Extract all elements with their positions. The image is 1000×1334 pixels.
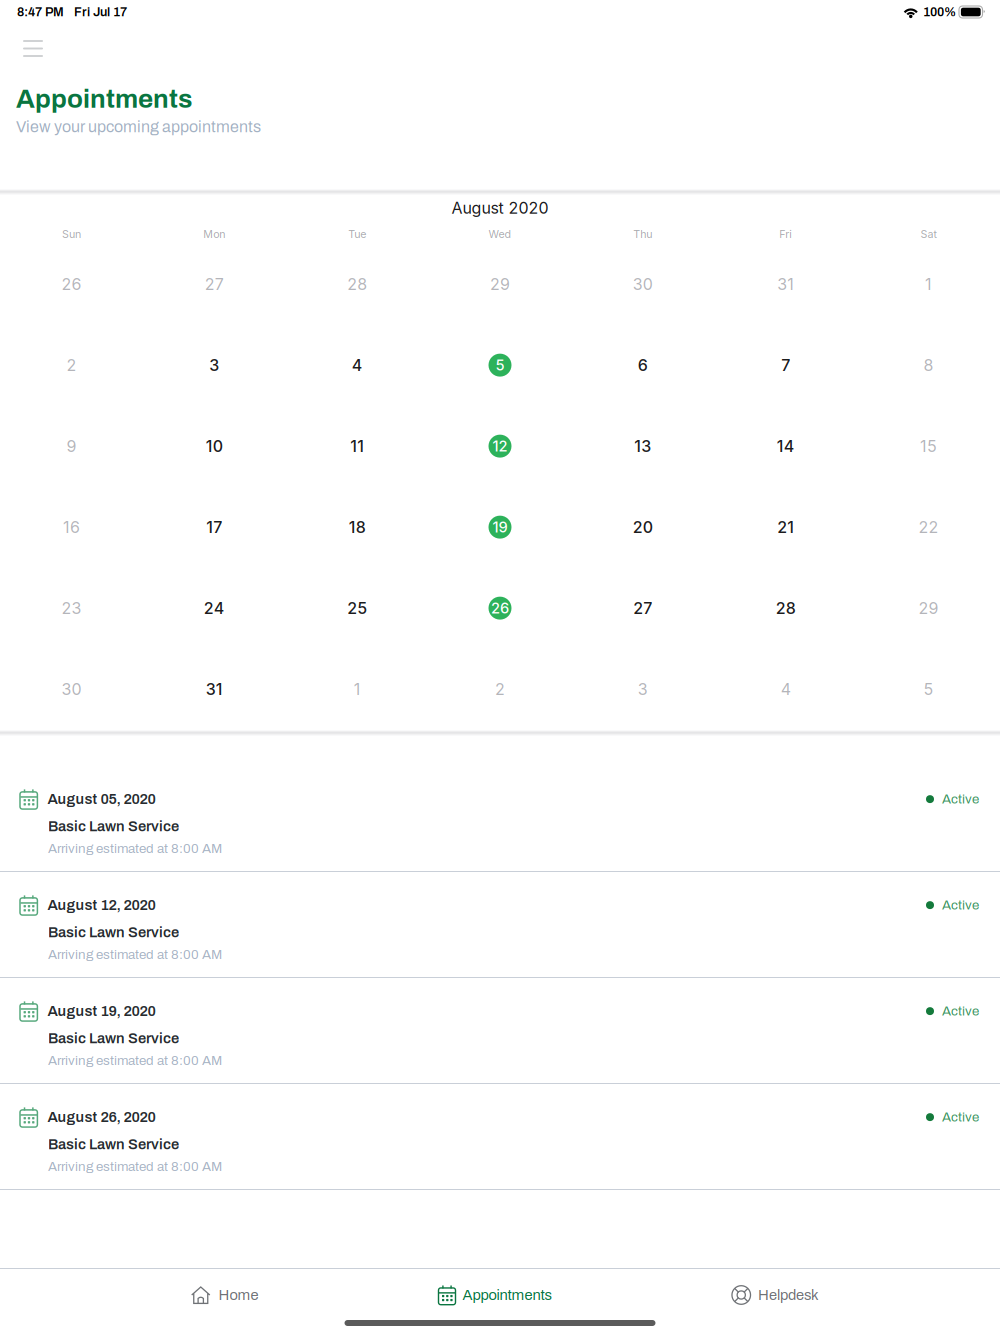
staticText: 18 — [349, 517, 366, 537]
staticText: 9 — [66, 436, 76, 456]
button[interactable]: 27 — [143, 244, 286, 325]
button[interactable]: Home — [191, 1273, 258, 1317]
staticText: 29 — [919, 598, 939, 618]
button[interactable]: 28 — [714, 568, 857, 649]
staticText: 31 — [206, 679, 223, 699]
button[interactable]: 25 — [286, 568, 429, 649]
button[interactable]: 2 — [0, 325, 143, 406]
staticText: 25 — [347, 598, 367, 618]
staticText: Active — [942, 1110, 979, 1124]
button[interactable]: 31 — [714, 244, 857, 325]
staticText: Active — [942, 898, 979, 912]
staticText: 8 — [924, 355, 934, 375]
staticText: 19 — [492, 518, 507, 536]
staticText: August 12, 2020 — [47, 897, 155, 913]
staticText: 3 — [209, 355, 219, 375]
staticText: 24 — [204, 598, 225, 618]
staticText: 13 — [634, 436, 651, 456]
button[interactable]: August 19, 2020 — [0, 978, 1000, 1083]
staticText: 100% — [923, 5, 956, 19]
button[interactable]: 4 — [714, 649, 857, 730]
button[interactable]: 2 — [429, 649, 571, 730]
staticText: 26 — [491, 599, 509, 617]
button[interactable]: 20 — [571, 487, 714, 568]
button[interactable]: 11 — [286, 406, 429, 487]
button[interactable]: 19 — [429, 487, 571, 568]
staticText: August 2020 — [451, 198, 548, 218]
staticText: Basic Lawn Service — [48, 818, 179, 834]
staticText: Arriving estimated at 8:00 AM — [48, 841, 222, 856]
button[interactable]: 27 — [571, 568, 714, 649]
staticText: 22 — [919, 517, 939, 537]
staticText: Helpdesk — [758, 1287, 819, 1303]
staticText: 31 — [777, 274, 794, 294]
button[interactable]: 30 — [571, 244, 714, 325]
button[interactable]: 18 — [286, 487, 429, 568]
button[interactable]: 29 — [857, 568, 1000, 649]
button[interactable]: 8 — [857, 325, 1000, 406]
staticText: 11 — [350, 436, 364, 456]
staticText: 2 — [66, 355, 76, 375]
button[interactable]: August 05, 2020 — [0, 766, 1000, 871]
button[interactable]: 30 — [0, 649, 143, 730]
button[interactable]: 28 — [286, 244, 429, 325]
button[interactable]: August 26, 2020 — [0, 1084, 1000, 1189]
button[interactable]: Appointments — [438, 1273, 551, 1317]
button[interactable]: 29 — [429, 244, 571, 325]
staticText: 1 — [354, 679, 361, 699]
staticText: 2 — [495, 679, 505, 699]
button[interactable]: 26 — [0, 244, 143, 325]
staticText: Wed — [488, 228, 511, 241]
staticText: 10 — [206, 436, 223, 456]
staticText: 29 — [490, 274, 510, 294]
staticText: Arriving estimated at 8:00 AM — [48, 1159, 222, 1174]
staticText: Tue — [348, 228, 366, 241]
staticText: August 19, 2020 — [47, 1003, 155, 1019]
staticText: Sat — [921, 228, 937, 241]
staticText: Thu — [633, 228, 652, 241]
button[interactable]: 21 — [714, 487, 857, 568]
button[interactable]: 12 — [429, 406, 571, 487]
button[interactable]: 5 — [429, 325, 571, 406]
button[interactable]: 26 — [429, 568, 571, 649]
staticText: Active — [942, 1004, 979, 1018]
staticText: Fri — [779, 228, 792, 241]
button[interactable]: 24 — [143, 568, 286, 649]
button[interactable]: 7 — [714, 325, 857, 406]
button[interactable]: 16 — [0, 487, 143, 568]
staticText: 12 — [492, 437, 507, 455]
button[interactable]: 31 — [143, 649, 286, 730]
button[interactable]: August 12, 2020 — [0, 872, 1000, 977]
button[interactable]: Menu — [0, 24, 59, 66]
button[interactable]: 9 — [0, 406, 143, 487]
staticText: 20 — [633, 517, 653, 537]
button[interactable]: 14 — [714, 406, 857, 487]
button[interactable]: Helpdesk — [731, 1273, 819, 1317]
staticText: 28 — [347, 274, 367, 294]
staticText: 30 — [633, 274, 653, 294]
staticText: 7 — [781, 355, 790, 375]
staticText: 14 — [777, 436, 795, 456]
button[interactable]: 10 — [143, 406, 286, 487]
staticText: 28 — [776, 598, 796, 618]
staticText: 17 — [206, 517, 222, 537]
staticText: Arriving estimated at 8:00 AM — [48, 947, 222, 962]
button[interactable]: 22 — [857, 487, 1000, 568]
staticText: 6 — [638, 355, 648, 375]
button[interactable]: 3 — [571, 649, 714, 730]
staticText: Basic Lawn Service — [48, 924, 179, 940]
button[interactable]: 13 — [571, 406, 714, 487]
button[interactable]: 23 — [0, 568, 143, 649]
staticText: Sun — [62, 228, 81, 241]
button[interactable]: 3 — [143, 325, 286, 406]
button[interactable]: 5 — [857, 649, 1000, 730]
button[interactable]: 17 — [143, 487, 286, 568]
staticText: 30 — [61, 679, 81, 699]
button[interactable]: 4 — [286, 325, 429, 406]
staticText: 27 — [205, 274, 224, 294]
button[interactable]: 15 — [857, 406, 1000, 487]
button[interactable]: 6 — [571, 325, 714, 406]
staticText: 3 — [638, 679, 648, 699]
